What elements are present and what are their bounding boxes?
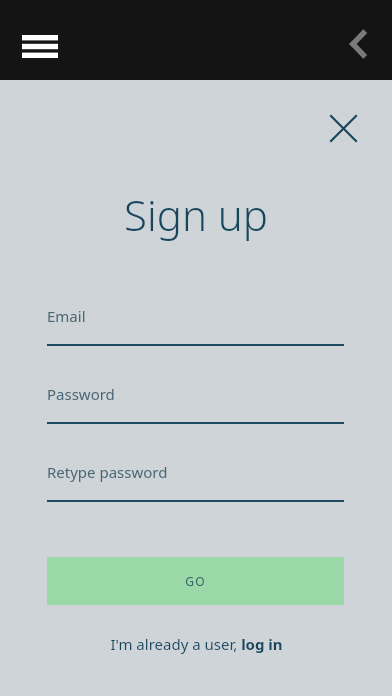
button[interactable]: Back — [334, 20, 382, 68]
button[interactable]: I'm already a user, log in — [0, 628, 392, 660]
staticText: GO — [185, 573, 206, 589]
staticText: Password — [47, 384, 115, 404]
button[interactable]: GO — [47, 557, 344, 605]
staticText: I'm already a user, log in — [110, 634, 283, 654]
button[interactable]: Retype password — [47, 462, 344, 502]
staticText: Sign up — [124, 186, 268, 243]
button[interactable]: Menu — [12, 18, 68, 74]
button[interactable]: Password — [47, 384, 344, 424]
button[interactable]: Email — [47, 306, 344, 346]
staticText: Email — [47, 306, 86, 326]
staticText: Retype password — [47, 462, 168, 482]
button[interactable]: Close — [319, 104, 367, 152]
